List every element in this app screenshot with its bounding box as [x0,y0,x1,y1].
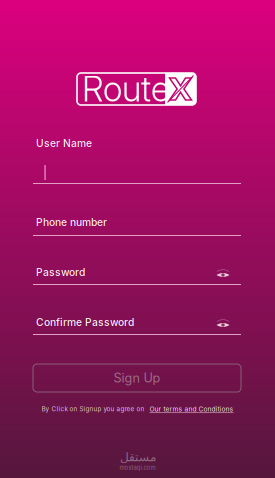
button[interactable]: Confirme Password [33,316,241,335]
staticText: Our terms and Conditions [149,405,233,413]
staticText: Route [82,68,170,110]
staticText: Password [36,266,85,278]
staticText: User Name [36,137,92,149]
staticText: By Click on Signup you agree on [41,405,144,413]
staticText: Sign Up [113,370,160,386]
button[interactable]: User Name [33,137,241,184]
button[interactable]: Phone number [33,216,241,236]
staticText: مستقل [119,450,155,464]
button[interactable]: Our terms and Conditions [149,405,233,413]
button[interactable]: Password [33,266,241,285]
staticText: Confirme Password [36,316,134,328]
staticText: mostaqi.com [119,464,155,471]
staticText: Phone number [36,216,107,228]
button[interactable]: Sign Up [33,364,241,392]
